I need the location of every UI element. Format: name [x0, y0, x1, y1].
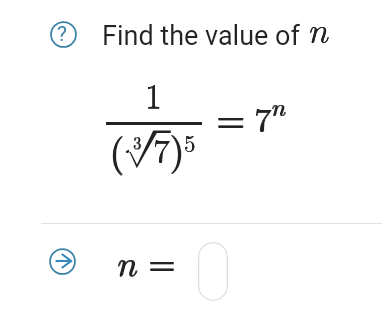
staticText: 7 [254, 94, 271, 142]
staticText: = [148, 234, 177, 285]
staticText: 5 [184, 126, 196, 159]
staticText: 7 [153, 125, 170, 173]
staticText: ) [169, 120, 185, 175]
staticText: n [115, 235, 136, 287]
staticText: n [270, 87, 285, 124]
staticText: = [148, 235, 177, 286]
staticText: 7 [254, 94, 271, 142]
staticText: ) [170, 120, 186, 175]
staticText: 1 [145, 71, 162, 119]
staticText: ( [109, 121, 125, 176]
staticText: ( [110, 121, 126, 176]
staticText: 5 [184, 126, 196, 159]
staticText: = [216, 90, 246, 144]
staticText: n [271, 87, 286, 124]
staticText: n [307, 1, 328, 53]
staticText: 1 [145, 70, 162, 118]
staticText: 1 [145, 70, 162, 118]
staticText: ( [109, 122, 125, 177]
staticText: ? [57, 22, 67, 47]
staticText: n [116, 234, 137, 286]
staticText: ) [169, 120, 185, 175]
staticText: n [307, 1, 328, 53]
staticText: 7 [153, 125, 170, 173]
staticText: = [216, 89, 246, 143]
staticText: 3 [133, 130, 142, 154]
staticText: 3 [133, 130, 142, 154]
button[interactable]: Help [50, 21, 77, 48]
staticText: 3 [133, 131, 142, 155]
staticText: n [307, 1, 328, 53]
staticText: = [148, 234, 177, 285]
staticText: 7 [153, 125, 170, 173]
staticText: = [216, 89, 246, 143]
button[interactable]: Submit answer [49, 248, 76, 275]
staticText: 7 [255, 94, 272, 142]
staticText: 5 [184, 126, 196, 159]
staticText: Find the value of [102, 20, 300, 52]
staticText: n [115, 234, 136, 286]
button[interactable] [198, 242, 228, 301]
staticText: n [270, 87, 285, 124]
